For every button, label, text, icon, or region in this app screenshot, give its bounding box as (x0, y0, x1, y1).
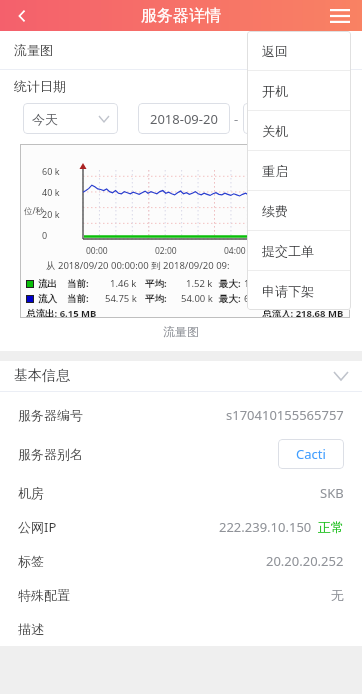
button[interactable]: 特殊配置 (0, 578, 362, 612)
button[interactable]: 机房 (0, 476, 362, 510)
button[interactable]: 今天 (23, 103, 118, 134)
staticText: 02:00 (155, 245, 177, 257)
button[interactable]: 返回 (0, 0, 44, 31)
staticText: 流量图 (14, 42, 53, 58)
button[interactable]: 基本信息 (0, 361, 362, 391)
staticText: 222.239.10.150 (219, 518, 312, 536)
staticText: SKB (320, 484, 344, 502)
button[interactable]: 提交工单 (247, 231, 351, 270)
button[interactable]: 公网IP (0, 510, 362, 544)
staticText: 服务器编号 (18, 407, 83, 423)
staticText: s170410155565757 (226, 406, 344, 424)
staticText: 今天 (32, 111, 58, 127)
staticText: 关机 (262, 123, 288, 139)
staticText: 平均: (145, 277, 167, 290)
staticText: 位/秒 (24, 205, 45, 217)
staticText: 无 (331, 587, 344, 603)
staticText: 2018-09-20 (255, 110, 323, 128)
staticText: 当前: (67, 292, 89, 305)
staticText: 服务器别名 (18, 446, 83, 462)
staticText: 描述 (18, 621, 44, 637)
staticText: 2018-09-20 (150, 110, 218, 128)
staticText: 最大: (219, 292, 241, 305)
staticText: 机房 (18, 485, 44, 501)
button[interactable]: 申请下架 (247, 271, 351, 310)
staticText: 返回 (262, 43, 288, 59)
staticText: 公网IP (18, 518, 57, 536)
staticText: 特殊配置 (18, 587, 70, 603)
staticText: 06:00 (293, 245, 315, 257)
staticText: 总流出: 6.15 MB (26, 307, 97, 318)
staticText: 续费 (262, 203, 288, 219)
staticText: 当前: (67, 277, 89, 290)
button[interactable]: 描述 (0, 612, 362, 646)
button[interactable]: 2018-09-20 (243, 103, 335, 134)
staticText: 平均: (145, 292, 167, 305)
staticText: 00:00 (86, 245, 108, 257)
staticText: 最大: (219, 277, 241, 290)
button[interactable]: 重启 (247, 151, 351, 190)
staticText: 1.46 k (110, 277, 137, 290)
staticText: 提交工单 (262, 243, 314, 259)
staticText: 从 2018/09/20 00:00:00 到 2018/09/20 09: (46, 259, 230, 272)
staticText: 0 (42, 229, 48, 241)
staticText: 60 k (42, 165, 60, 177)
staticText: 1.93 k (244, 277, 271, 290)
staticText: 正常 (318, 519, 344, 535)
staticText: 重启 (262, 163, 288, 179)
button[interactable]: 开机 (247, 71, 351, 110)
staticText: 20 k (42, 208, 60, 220)
button[interactable]: 菜单 (318, 0, 362, 31)
button[interactable]: 续费 (247, 191, 351, 230)
button[interactable]: 关机 (247, 111, 351, 150)
staticText: 流出 (38, 278, 57, 290)
staticText: 40 k (42, 186, 60, 198)
staticText: 1.52 k (186, 277, 213, 290)
button[interactable]: 2018-09-20 (138, 103, 230, 134)
staticText: 总流入: 218.68 MB (262, 307, 344, 318)
staticText: 开机 (262, 83, 288, 99)
staticText: 统计日期 (14, 78, 66, 94)
button[interactable]: 标签 (0, 544, 362, 578)
staticText: 服务器详情 (141, 6, 221, 26)
staticText: 54.00 k (181, 292, 213, 305)
staticText: - (234, 110, 239, 128)
staticText: 标签 (18, 553, 44, 569)
staticText: 20.20.20.252 (266, 552, 344, 570)
button[interactable]: 服务器编号 (0, 398, 362, 432)
staticText: 基本信息 (14, 367, 70, 385)
staticText: 54.75 k (105, 292, 137, 305)
staticText: 64.51 k (244, 292, 276, 305)
staticText: 流量图 (20, 148, 308, 164)
button[interactable]: Cacti (278, 439, 344, 469)
staticText: 流量图 (0, 324, 362, 339)
staticText: 申请下架 (262, 283, 314, 299)
button[interactable]: 返回 (247, 31, 351, 70)
staticText: Cacti (296, 445, 326, 463)
staticText: 04:00 (224, 245, 246, 257)
staticText: 流入 (38, 293, 57, 305)
